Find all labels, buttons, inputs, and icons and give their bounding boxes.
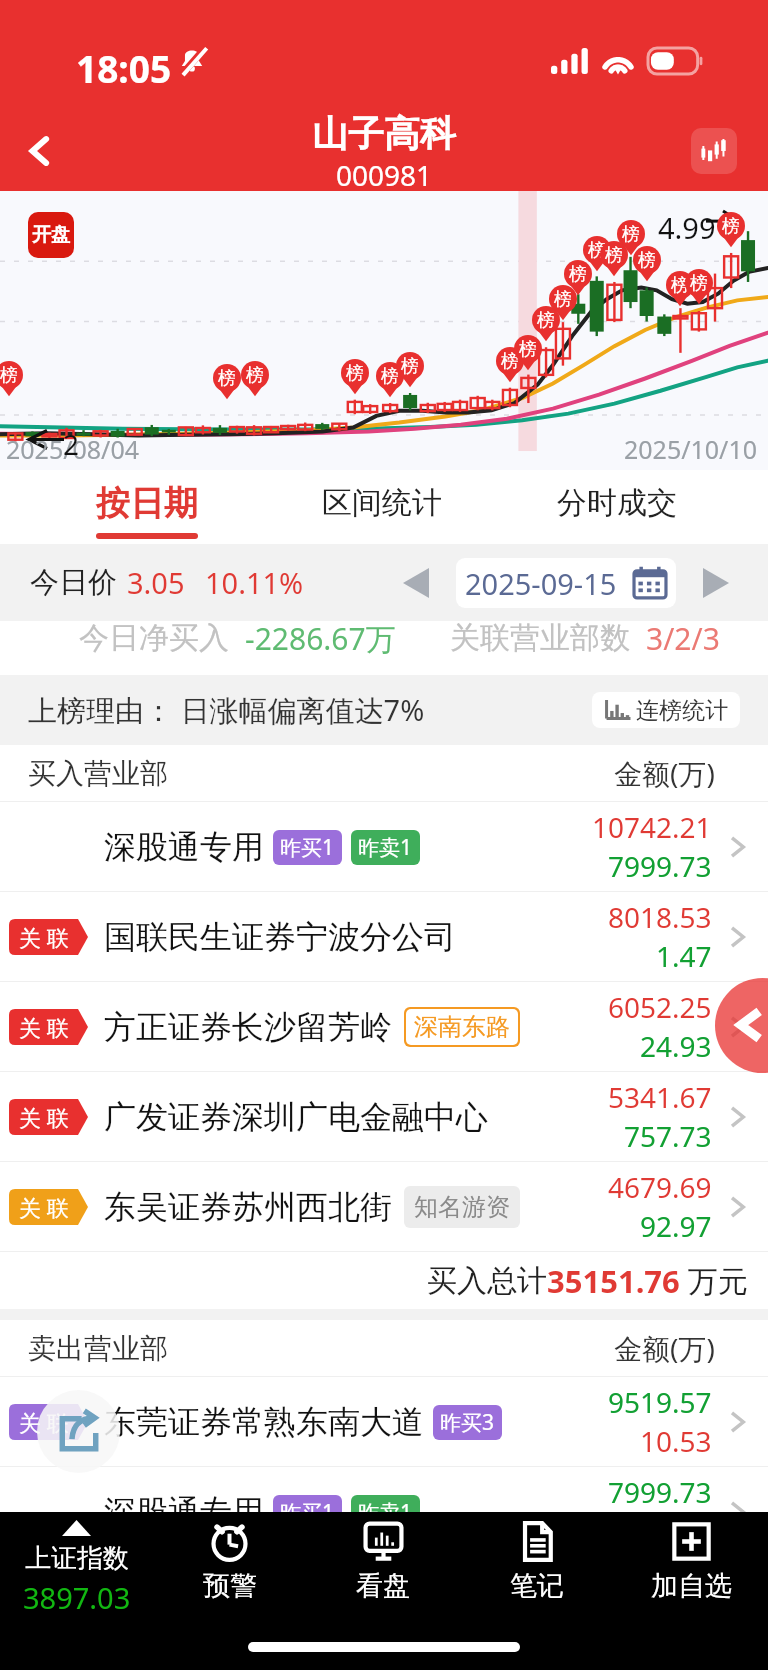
staticText: 昨买1 bbox=[280, 833, 335, 862]
staticText: 关 联 bbox=[19, 1012, 69, 1042]
staticText: 榜 bbox=[218, 367, 236, 390]
staticText: 榜 bbox=[0, 364, 18, 387]
staticText: 2025-09-15 bbox=[465, 564, 617, 603]
staticText: 榜 bbox=[537, 309, 555, 332]
staticText: 榜 bbox=[519, 338, 537, 361]
staticText: 榜 bbox=[622, 223, 640, 246]
staticText: 757.73 bbox=[624, 1117, 712, 1155]
staticText: 预警 bbox=[203, 1569, 257, 1603]
button[interactable]: 深股通专用 bbox=[0, 802, 768, 891]
staticText: 榜 bbox=[554, 288, 572, 311]
staticText: 榜 bbox=[588, 239, 606, 262]
staticText: 2025/08/04 bbox=[6, 432, 140, 466]
staticText: 榜 bbox=[722, 215, 740, 238]
staticText: 榜 bbox=[671, 274, 689, 297]
staticText: 5341.67 bbox=[608, 1078, 712, 1116]
staticText: 看盘 bbox=[356, 1569, 410, 1603]
staticText: 方正证券长沙留芳岭 bbox=[104, 1007, 392, 1047]
staticText: 昨买1 bbox=[280, 1498, 335, 1527]
staticText: 买入营业部 bbox=[28, 756, 168, 791]
button[interactable]: 上证指数 bbox=[0, 1520, 153, 1620]
staticText: 昨买3 bbox=[440, 1408, 495, 1437]
staticText: 昨卖1 bbox=[358, 833, 413, 862]
staticText: 3897.03 bbox=[23, 1578, 131, 1617]
staticText: 3.05 bbox=[127, 563, 185, 602]
staticText: 榜 bbox=[346, 362, 364, 385]
staticText: 榜 bbox=[401, 355, 419, 378]
button[interactable]: 预警 bbox=[153, 1520, 306, 1620]
button[interactable]: 关 联 bbox=[0, 1072, 768, 1161]
staticText: 6052.25 bbox=[608, 988, 712, 1026]
staticText: 4679.69 bbox=[608, 1168, 712, 1206]
staticText: 1.47 bbox=[656, 937, 712, 975]
staticText: 关 联 bbox=[19, 1102, 69, 1132]
button[interactable]: Previous day bbox=[394, 561, 438, 605]
button[interactable]: Share bbox=[37, 1390, 120, 1473]
button[interactable]: 关 联 bbox=[0, 1162, 768, 1251]
staticText: 10.11% bbox=[205, 563, 304, 602]
staticText: 92.97 bbox=[640, 1207, 712, 1245]
staticText: 关 联 bbox=[19, 1192, 69, 1222]
staticText: 金额(万) bbox=[614, 754, 715, 792]
button[interactable]: 关 联 bbox=[0, 892, 768, 981]
staticText: 榜 bbox=[638, 249, 656, 272]
staticText: 35151.76 bbox=[547, 1260, 680, 1302]
staticText: 9519.57 bbox=[608, 1383, 712, 1421]
button[interactable]: Chart bbox=[691, 128, 737, 174]
staticText: 广发证券深圳广电金融中心 bbox=[104, 1097, 488, 1137]
staticText: 开盘 bbox=[32, 223, 70, 247]
staticText: 连榜统计 bbox=[636, 696, 728, 725]
staticText: 买入总计 bbox=[427, 1262, 547, 1300]
staticText: 榜 bbox=[501, 350, 519, 373]
button[interactable]: 加自选 bbox=[614, 1520, 768, 1620]
button[interactable]: 分时成交 bbox=[499, 470, 734, 544]
button[interactable]: 关 联 bbox=[0, 982, 768, 1071]
staticText: 深股通专用 bbox=[104, 827, 264, 867]
button[interactable]: 看盘 bbox=[306, 1520, 460, 1620]
staticText: -2286.67万 bbox=[245, 618, 396, 659]
staticText: 东莞证券常熟东南大道 bbox=[104, 1402, 424, 1442]
staticText: 000981 bbox=[336, 156, 433, 192]
staticText: 今日价 bbox=[30, 564, 117, 601]
staticText: 深南东路 bbox=[414, 1012, 510, 1042]
staticText: 榜 bbox=[569, 263, 587, 286]
staticText: 关 联 bbox=[19, 922, 69, 952]
staticText: 万元 bbox=[680, 1260, 748, 1301]
staticText: 分时成交 bbox=[557, 484, 677, 522]
staticText: 昨卖1 bbox=[358, 1498, 413, 1527]
staticText: 8018.53 bbox=[608, 898, 712, 936]
button[interactable]: Next day bbox=[694, 561, 738, 605]
button[interactable]: 2025-09-15 bbox=[456, 558, 676, 608]
staticText: 10742.21 bbox=[592, 808, 712, 846]
staticText: 3/2/3 bbox=[646, 618, 720, 659]
button[interactable]: 按日期 bbox=[30, 470, 264, 544]
staticText: 加自选 bbox=[651, 1569, 732, 1603]
staticText: 2025/10/10 bbox=[624, 432, 758, 466]
button[interactable]: Back bbox=[0, 111, 80, 191]
button[interactable]: 区间统计 bbox=[264, 470, 499, 544]
staticText: 24.93 bbox=[640, 1027, 712, 1065]
button[interactable]: 关 联 bbox=[0, 1377, 768, 1466]
staticText: 关 联 bbox=[19, 1407, 69, 1437]
staticText: 按日期 bbox=[96, 482, 198, 525]
staticText: 上证指数 bbox=[25, 1542, 129, 1575]
staticText: 东吴证券苏州西北街 bbox=[104, 1187, 392, 1227]
staticText: 知名游资 bbox=[414, 1192, 510, 1222]
staticText: 山子高科 bbox=[312, 111, 456, 156]
staticText: 榜 bbox=[605, 244, 623, 267]
staticText: 7999.73 bbox=[608, 1473, 712, 1511]
staticText: 上榜理由： 日涨幅偏离值达7% bbox=[28, 690, 425, 730]
staticText: 2 bbox=[63, 425, 80, 463]
button[interactable]: 笔记 bbox=[460, 1520, 614, 1620]
staticText: 榜 bbox=[246, 364, 264, 387]
staticText: 7999.73 bbox=[608, 847, 712, 885]
staticText: 4.99 bbox=[658, 208, 716, 247]
staticText: 榜 bbox=[690, 272, 708, 295]
staticText: 深股通专用 bbox=[104, 1492, 264, 1532]
button[interactable]: 深股通专用 bbox=[0, 1467, 768, 1556]
staticText: 关联营业部数 bbox=[450, 619, 630, 657]
button[interactable]: Previous record bbox=[715, 978, 768, 1073]
staticText: 笔记 bbox=[510, 1569, 564, 1603]
button[interactable]: 连榜统计 bbox=[592, 692, 740, 728]
staticText: 区间统计 bbox=[322, 484, 442, 522]
